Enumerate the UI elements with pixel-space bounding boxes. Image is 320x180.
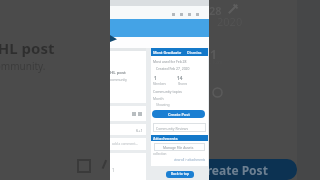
staticText: Created Feb 27, 2020 (156, 66, 190, 71)
button[interactable]: Attach file (99, 159, 111, 171)
staticText: Community Reviews (156, 126, 189, 131)
button[interactable] (166, 171, 194, 178)
button[interactable]: Create Post (170, 159, 297, 180)
staticText: 1 (210, 46, 217, 62)
staticText: Month (153, 96, 164, 101)
staticText: GHL post (0, 38, 55, 58)
staticText: 1 (154, 75, 157, 81)
staticText: view all > attachments (174, 158, 206, 162)
staticText: add a comment... (112, 142, 139, 146)
staticText: Likes (208, 58, 223, 66)
button[interactable]: Comment (212, 87, 223, 98)
staticText: Most used for Feb 28 (153, 59, 187, 64)
staticText: 1 (112, 167, 115, 173)
staticText: 14 (177, 75, 183, 81)
staticText: 28 (209, 3, 222, 18)
staticText: HL post (110, 70, 126, 76)
staticText: Create Post (199, 162, 268, 178)
button[interactable] (152, 110, 205, 118)
staticText: Showing (156, 102, 170, 107)
staticText: collection (153, 152, 167, 156)
staticText: 6+1 (136, 128, 143, 133)
staticText: Members (153, 82, 166, 86)
staticText: Community topics (153, 89, 182, 94)
staticText: Most Graduate (153, 50, 182, 55)
button[interactable]: Add image (78, 160, 90, 172)
staticText: Shares (178, 82, 188, 86)
staticText: Back to top (171, 172, 190, 176)
staticText: community (110, 78, 127, 82)
staticText: Attachments (153, 136, 178, 141)
button[interactable]: Edit (227, 3, 239, 15)
staticText: community. (0, 59, 46, 73)
staticText: Dismiss (187, 50, 202, 55)
staticText: Create Post (168, 112, 190, 117)
staticText: Manage File Assets (163, 145, 194, 150)
